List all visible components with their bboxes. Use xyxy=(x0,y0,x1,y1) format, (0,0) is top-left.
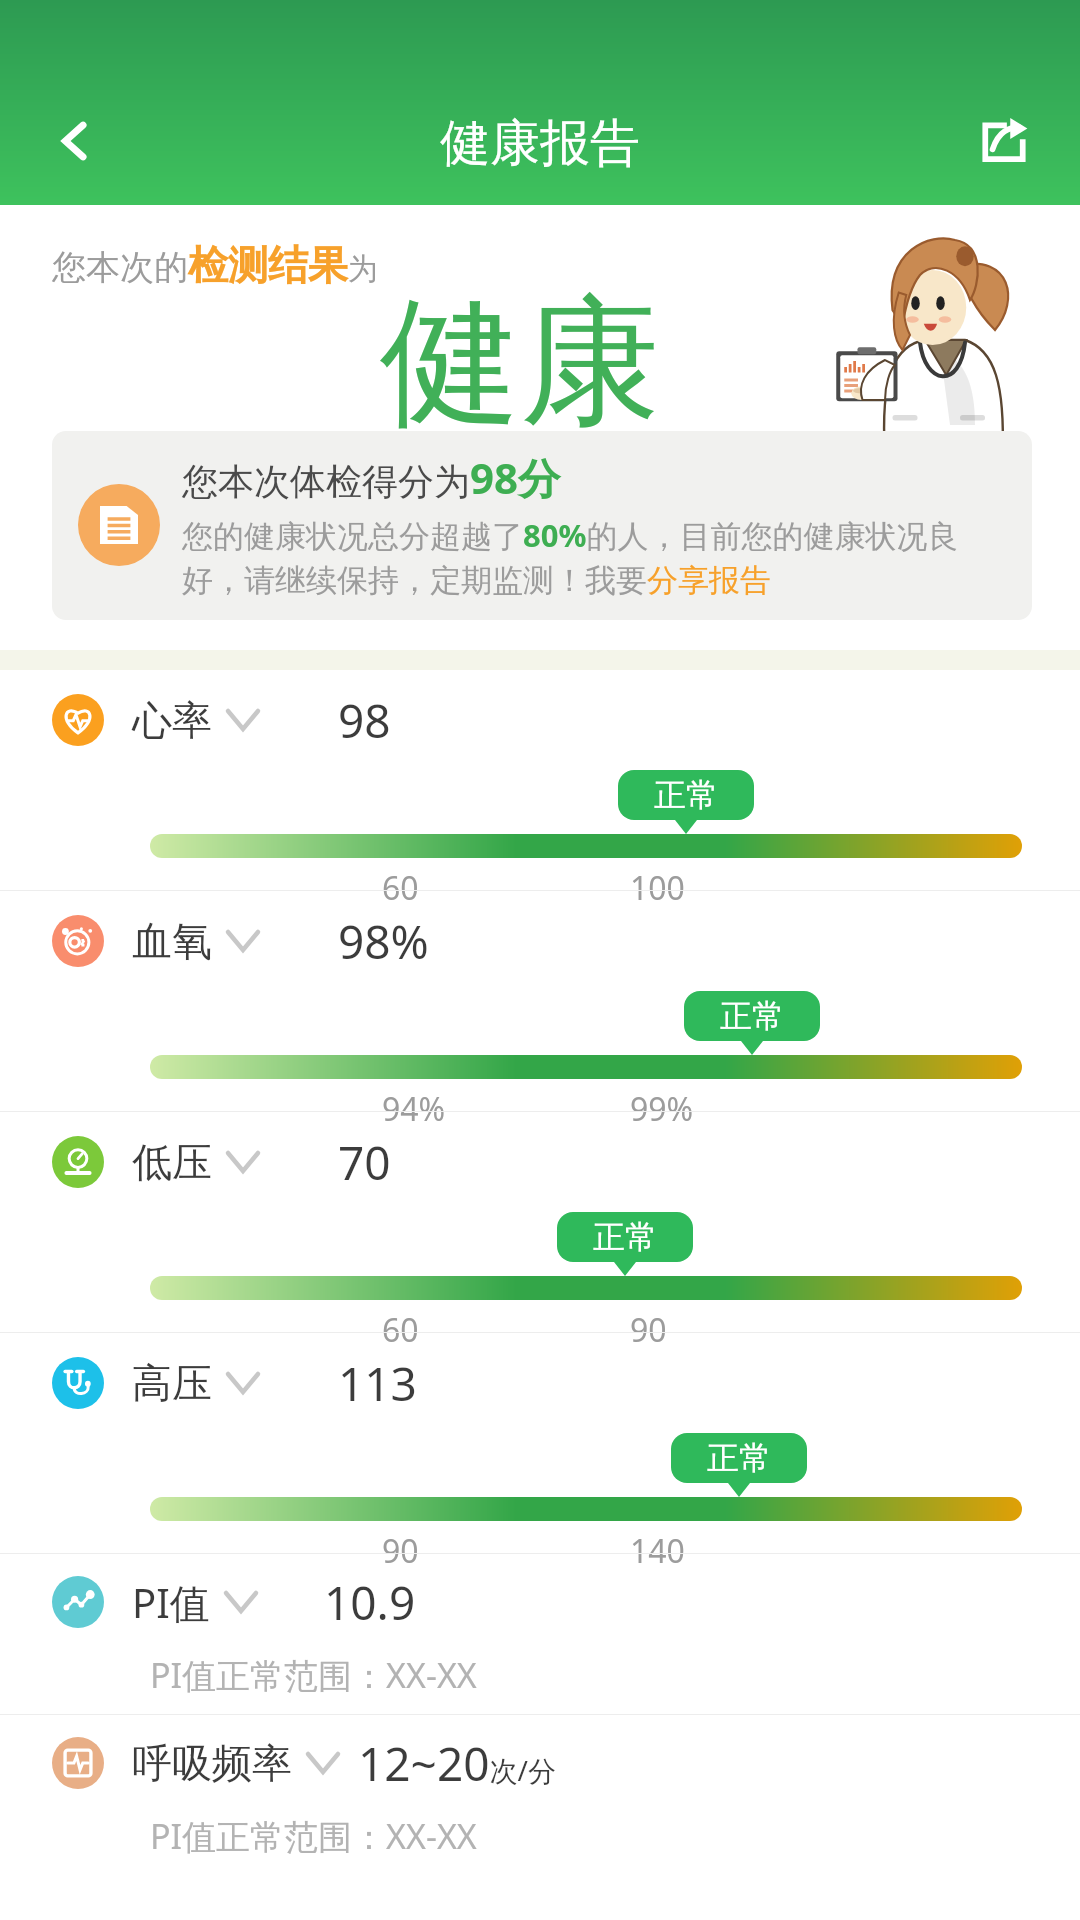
button[interactable]: 呼吸频率 xyxy=(0,1715,1080,1875)
staticText: 60 xyxy=(382,866,419,910)
button[interactable]: PI值 xyxy=(0,1554,1080,1714)
staticText: 低压 xyxy=(132,1137,212,1187)
staticText: 12~20次/分 xyxy=(358,1732,556,1795)
staticText: 100 xyxy=(630,866,685,910)
staticText: 113 xyxy=(338,1352,417,1415)
staticText: 98 xyxy=(338,689,391,752)
staticText: 呼吸频率 xyxy=(132,1738,292,1788)
staticText: 正常 xyxy=(654,775,718,815)
staticText: 90 xyxy=(382,1529,419,1573)
staticText: 98% xyxy=(338,910,429,973)
staticText: 正常 xyxy=(707,1438,771,1478)
staticText: 10.9 xyxy=(324,1571,416,1634)
staticText: 70 xyxy=(338,1131,391,1194)
staticText: 心率 xyxy=(132,695,212,745)
staticText: 正常 xyxy=(720,996,784,1036)
staticText: 94% xyxy=(382,1087,446,1131)
staticText: PI值正常范围：XX-XX xyxy=(150,1652,477,1698)
staticText: 140 xyxy=(630,1529,685,1573)
staticText: 99% xyxy=(630,1087,694,1131)
button[interactable]: 心率 xyxy=(0,670,1080,890)
button[interactable]: 低压 xyxy=(0,1112,1080,1332)
button[interactable]: 您本次体检得分为98分 xyxy=(52,431,1032,620)
staticText: 您本次体检得分为98分 xyxy=(182,449,561,506)
button[interactable]: 高压 xyxy=(0,1333,1080,1553)
staticText: 高压 xyxy=(132,1358,212,1408)
staticText: 您的健康状况总分超越了80%的人，目前您的健康状况良好，请继续保持，定期监测！我… xyxy=(182,514,1010,600)
button[interactable]: 血氧 xyxy=(0,891,1080,1111)
staticText: PI值正常范围：XX-XX xyxy=(150,1813,477,1859)
button[interactable]: Share xyxy=(968,105,1040,177)
button[interactable]: Back xyxy=(40,105,112,177)
staticText: 60 xyxy=(382,1308,419,1352)
staticText: 血氧 xyxy=(132,916,212,966)
staticText: 90 xyxy=(630,1308,667,1352)
staticText: 健康报告 xyxy=(440,112,640,175)
staticText: 健康 xyxy=(380,275,660,451)
staticText: PI值 xyxy=(132,1575,210,1630)
staticText: 您本次的检测结果为 xyxy=(52,240,378,290)
staticText: 正常 xyxy=(593,1217,657,1257)
